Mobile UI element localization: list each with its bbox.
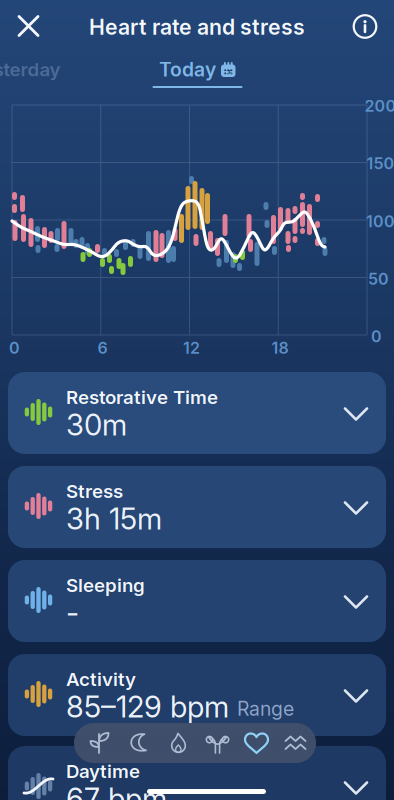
- staticText: Yesterday: [0, 58, 60, 81]
- staticText: 67 bpm: [66, 781, 167, 800]
- staticText: Sleeping: [66, 574, 145, 597]
- staticText: -: [66, 595, 79, 630]
- button[interactable]: Daytime: [8, 746, 386, 800]
- button[interactable]: Activity: [159, 723, 198, 763]
- button[interactable]: Sleep: [120, 723, 159, 763]
- staticText: 200: [364, 96, 394, 116]
- button[interactable]: Heart rate: [237, 723, 276, 763]
- staticText: 30m: [66, 407, 127, 442]
- staticText: Stress: [66, 480, 123, 503]
- staticText: Heart rate and stress: [89, 14, 305, 40]
- staticText: 18: [271, 338, 288, 358]
- staticText: 150: [366, 154, 394, 173]
- staticText: 100: [366, 212, 394, 231]
- staticText: 50: [368, 269, 389, 289]
- button[interactable]: Cycle: [198, 723, 237, 763]
- staticText: Activity: [66, 668, 136, 691]
- button[interactable]: Restorative time: [81, 723, 120, 763]
- staticText: 0: [371, 327, 382, 346]
- staticText: 85–129 bpm: [66, 689, 229, 724]
- staticText: 0: [9, 338, 20, 358]
- button[interactable]: Sleeping: [8, 560, 386, 642]
- staticText: 3h 15m: [66, 501, 162, 536]
- button[interactable]: Info: [350, 11, 380, 41]
- button[interactable]: Stress: [8, 466, 386, 548]
- staticText: Today: [159, 58, 216, 81]
- button[interactable]: Close: [13, 11, 43, 41]
- staticText: Range: [237, 697, 294, 720]
- staticText: 6: [97, 338, 107, 358]
- staticText: Restorative Time: [66, 386, 218, 409]
- staticText: Daytime: [66, 760, 140, 783]
- button[interactable]: Restorative Time: [8, 372, 386, 454]
- button[interactable]: Stress: [276, 723, 315, 763]
- staticText: 12: [183, 338, 200, 358]
- button[interactable]: Today: [152, 56, 242, 82]
- button[interactable]: Yesterday: [0, 58, 76, 80]
- button[interactable]: Activity: [8, 654, 386, 736]
